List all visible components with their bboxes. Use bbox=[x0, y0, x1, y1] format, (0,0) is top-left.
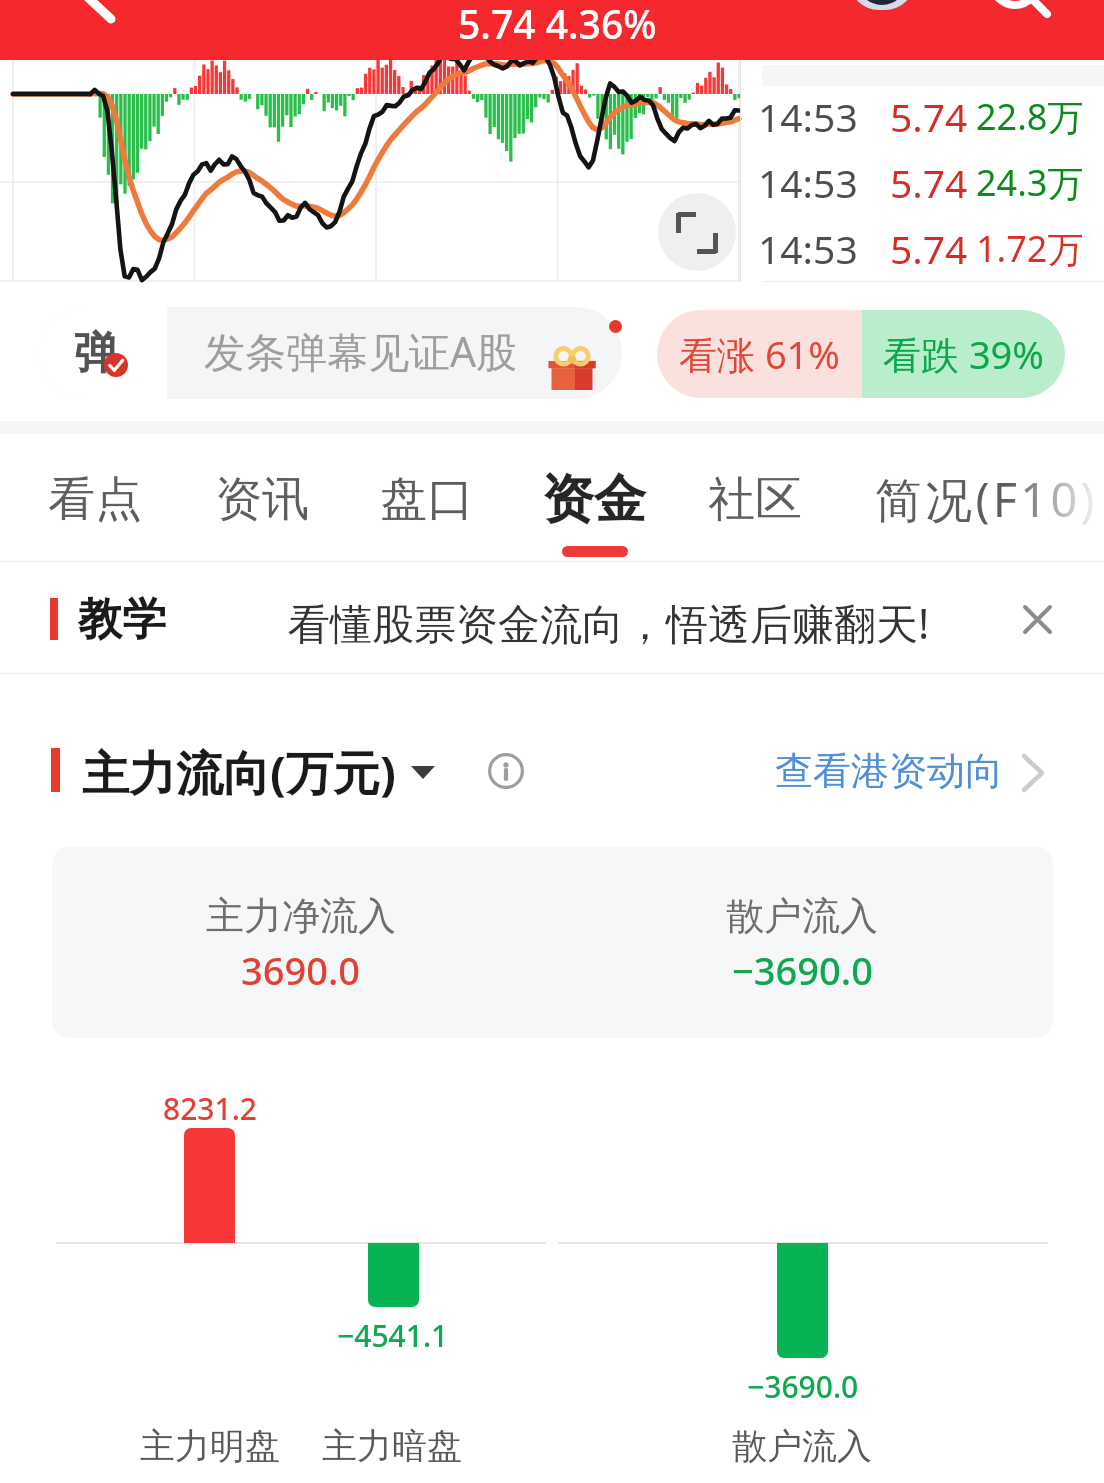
button[interactable]: 看点 bbox=[30, 434, 160, 562]
button[interactable]: 资讯 bbox=[197, 434, 327, 562]
staticText: 看涨 61% bbox=[679, 328, 840, 380]
button[interactable]: 14:53 bbox=[740, 83, 1104, 149]
staticText: 5.74 bbox=[890, 156, 968, 209]
staticText: −3690.0 bbox=[732, 944, 873, 996]
button[interactable]: 社区 bbox=[690, 434, 820, 562]
staticText: 盘口 bbox=[380, 470, 474, 529]
staticText: −3690.0 bbox=[747, 1366, 859, 1407]
staticText: 14:53 bbox=[758, 222, 858, 275]
staticText: 发条弹幕见证A股 bbox=[204, 323, 518, 379]
staticText: 5.74 bbox=[890, 90, 968, 143]
staticText: 主力明盘 bbox=[140, 1424, 280, 1468]
staticText: 看懂股票资金流向，悟透后赚翻天! bbox=[288, 594, 930, 651]
staticText: 散户流入 bbox=[732, 1424, 872, 1468]
staticText: 3690.0 bbox=[241, 944, 361, 996]
staticText: 主力流向(万元) bbox=[82, 740, 396, 804]
button[interactable]: 弹 bbox=[39, 307, 622, 399]
staticText: 8231.2 bbox=[163, 1088, 257, 1129]
button[interactable]: 查看港资动向 bbox=[760, 734, 1070, 802]
button[interactable]: Search bbox=[989, 0, 1053, 14]
button[interactable]: Info bbox=[488, 753, 524, 789]
staticText: 教学 bbox=[78, 592, 166, 647]
staticText: 简况(F10) bbox=[875, 467, 1098, 531]
button[interactable]: 资金 bbox=[524, 434, 664, 562]
staticText: 主力暗盘 bbox=[322, 1424, 462, 1468]
staticText: 散户流入 bbox=[726, 892, 878, 940]
staticText: 看点 bbox=[48, 470, 142, 529]
button[interactable]: Close bbox=[1005, 589, 1067, 651]
staticText: 14:53 bbox=[758, 90, 858, 143]
staticText: −4541.1 bbox=[337, 1315, 449, 1356]
staticText: 资金 bbox=[542, 467, 646, 533]
staticText: 1.72万 bbox=[976, 224, 1084, 273]
button[interactable]: Back bbox=[60, 0, 140, 20]
staticText: 看跌 39% bbox=[883, 328, 1044, 380]
button[interactable]: 盘口 bbox=[362, 434, 492, 562]
staticText: 弹 bbox=[74, 326, 118, 381]
button[interactable]: Profile bbox=[849, 0, 915, 10]
staticText: 24.3万 bbox=[976, 158, 1084, 207]
button[interactable]: 简况(F10) bbox=[857, 434, 1104, 562]
button[interactable]: 14:53 bbox=[740, 215, 1104, 281]
staticText: 5.74 bbox=[890, 222, 968, 275]
button[interactable]: 14:53 bbox=[740, 149, 1104, 215]
staticText: 查看港资动向 bbox=[775, 747, 1003, 795]
staticText: 社区 bbox=[708, 470, 802, 529]
button[interactable]: MACD chart bbox=[0, 60, 740, 282]
staticText: 5.74 4.36% bbox=[458, 0, 657, 50]
button[interactable] bbox=[52, 847, 1053, 1038]
staticText: 14:53 bbox=[758, 156, 858, 209]
staticText: 主力净流入 bbox=[206, 892, 396, 940]
button[interactable]: 看涨 61% bbox=[657, 310, 1065, 398]
button[interactable]: Fullscreen bbox=[658, 193, 736, 271]
staticText: 22.8万 bbox=[976, 92, 1084, 141]
staticText: 资讯 bbox=[215, 470, 309, 529]
